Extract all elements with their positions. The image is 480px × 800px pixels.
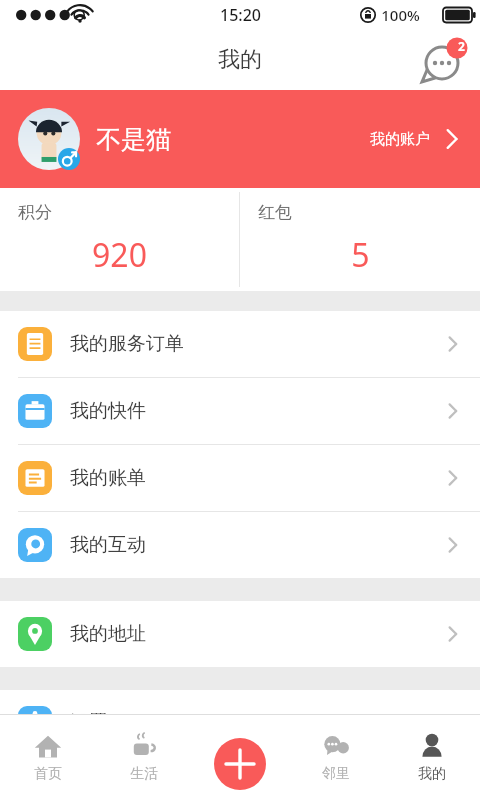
- button[interactable]: Add: [214, 738, 266, 790]
- button[interactable]: 我的账单: [0, 445, 480, 511]
- staticText: 2: [458, 38, 465, 54]
- staticText: 我的服务订单: [70, 332, 184, 356]
- staticText: 100%: [381, 5, 420, 25]
- button[interactable]: 我的: [384, 714, 480, 800]
- staticText: 5: [351, 233, 370, 277]
- button[interactable]: 我的服务订单: [0, 311, 480, 377]
- button[interactable]: 我的快件: [0, 378, 480, 444]
- staticText: 邻里: [322, 765, 350, 783]
- staticText: 首页: [34, 765, 62, 783]
- staticText: 920: [92, 233, 147, 277]
- staticText: 不是猫: [96, 124, 171, 155]
- button[interactable]: 我的互动: [0, 512, 480, 578]
- button[interactable]: 积分: [0, 188, 239, 291]
- button[interactable]: Messages: [420, 36, 468, 84]
- staticText: 我的互动: [70, 533, 146, 557]
- staticText: 设置: [70, 711, 108, 735]
- button[interactable]: 设置: [0, 690, 480, 756]
- staticText: 我的地址: [70, 622, 146, 646]
- button[interactable]: 我的地址: [0, 601, 480, 667]
- staticText: 积分: [18, 202, 52, 223]
- staticText: 我的: [418, 765, 446, 783]
- button[interactable]: 邻里: [288, 714, 384, 800]
- button[interactable]: 生活: [96, 714, 192, 800]
- button[interactable]: 红包: [240, 188, 480, 291]
- staticText: 我的账单: [70, 466, 146, 490]
- staticText: 我的: [218, 46, 262, 74]
- staticText: 生活: [130, 765, 158, 783]
- staticText: 我的快件: [70, 399, 146, 423]
- staticText: 我的账户: [370, 130, 430, 149]
- button[interactable]: 不是猫: [0, 90, 480, 188]
- button[interactable]: 首页: [0, 714, 96, 800]
- staticText: 红包: [258, 202, 292, 223]
- staticText: 15:20: [220, 4, 261, 26]
